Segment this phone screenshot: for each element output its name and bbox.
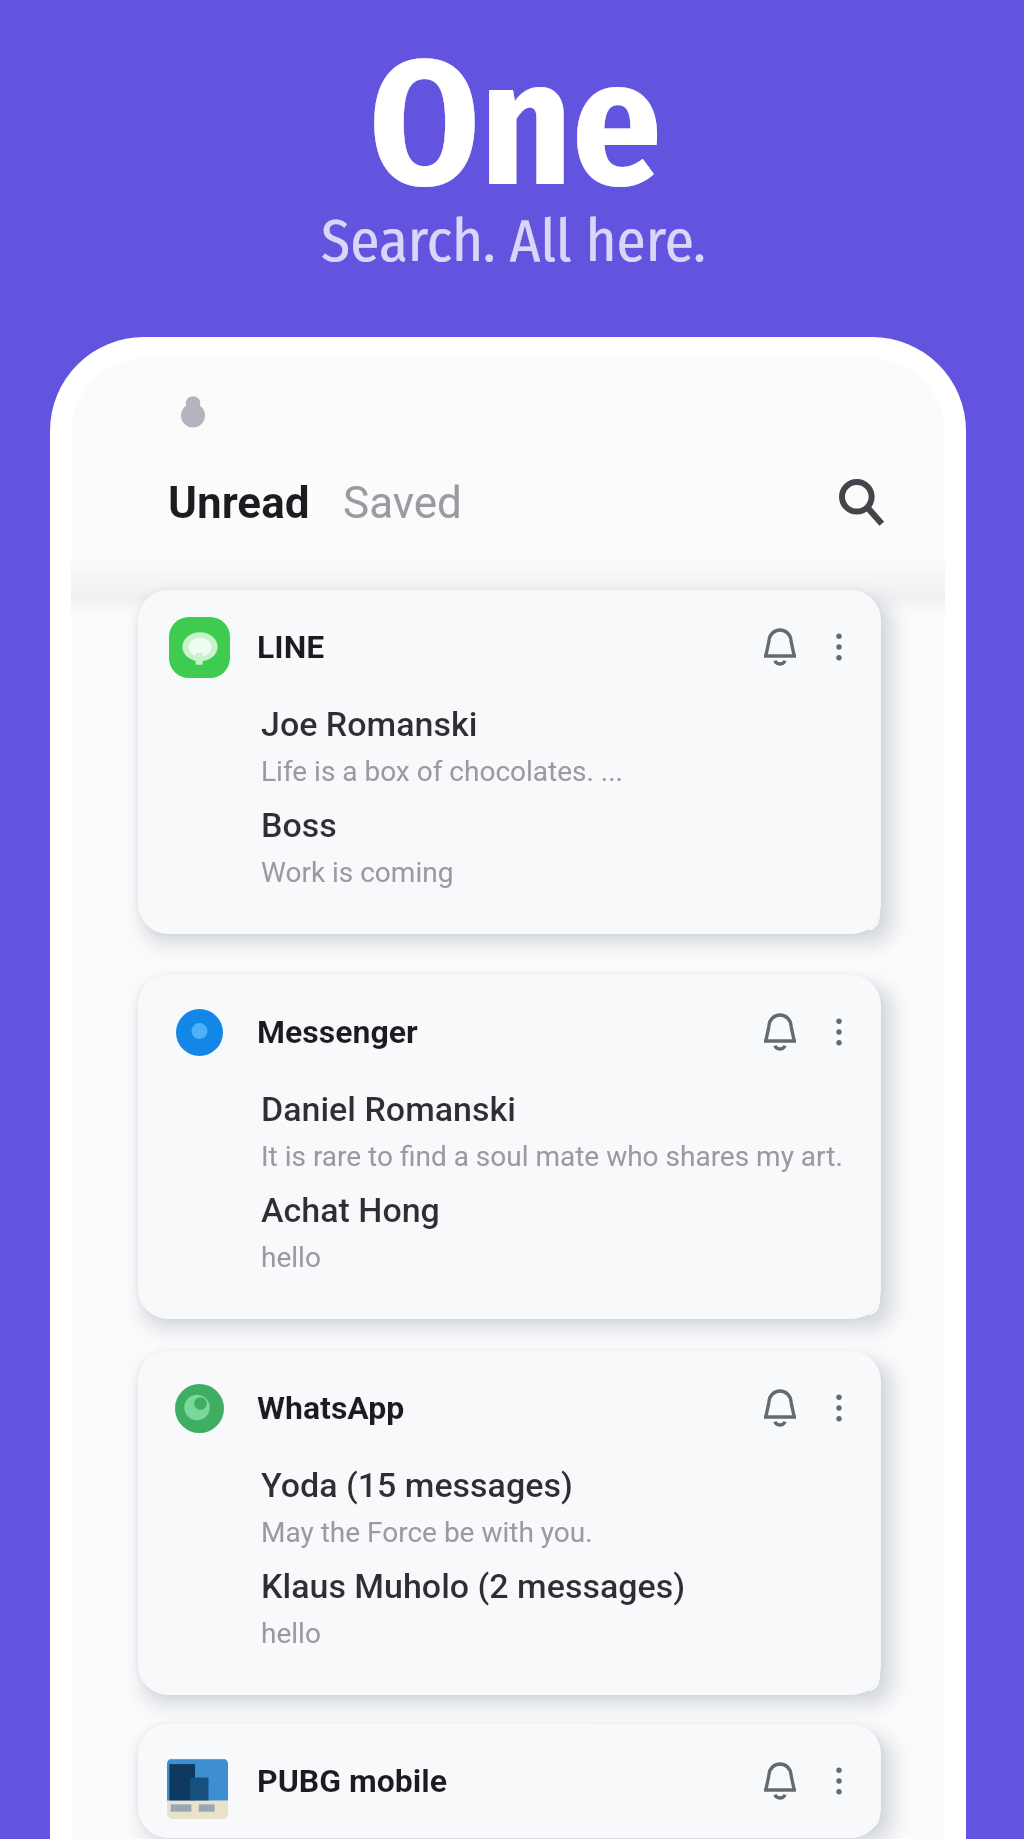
button[interactable]: LINE [138, 590, 881, 934]
staticText: PUBG mobile [257, 1762, 447, 1800]
staticText: hello [261, 1617, 321, 1650]
staticText: Joe Romanski [261, 704, 478, 744]
staticText: Unread [168, 477, 310, 529]
button[interactable]: Search [828, 469, 896, 537]
button[interactable]: More options [821, 1014, 857, 1050]
staticText: Klaus Muholo (2 messages) [261, 1566, 686, 1606]
button[interactable]: PUBG mobile [138, 1724, 881, 1838]
staticText: Achat Hong [261, 1190, 440, 1230]
staticText: Daniel Romanski [261, 1089, 516, 1129]
staticText: Yoda (15 messages) [261, 1465, 573, 1505]
button[interactable]: Saved [337, 471, 468, 535]
button[interactable]: More options [821, 1763, 857, 1799]
button[interactable]: Mute notifications [749, 1750, 811, 1812]
button[interactable]: Mute notifications [749, 1001, 811, 1063]
button[interactable]: More options [821, 629, 857, 665]
button[interactable]: More options [821, 1390, 857, 1426]
staticText: It is rare to find a soul mate who share… [261, 1140, 843, 1173]
button[interactable]: WhatsApp [138, 1351, 881, 1695]
staticText: Saved [343, 477, 462, 529]
staticText: hello [261, 1241, 321, 1274]
staticText: WhatsApp [257, 1389, 405, 1427]
staticText: Work is coming [261, 856, 454, 889]
staticText: One [369, 19, 662, 230]
staticText: Messenger [257, 1013, 418, 1051]
button[interactable]: Unread [162, 471, 316, 535]
staticText: LINE [257, 628, 325, 666]
staticText: Boss [261, 805, 337, 845]
button[interactable]: Mute notifications [749, 616, 811, 678]
button[interactable]: Messenger [138, 975, 881, 1319]
staticText: Search. All here. [321, 206, 706, 277]
staticText: Life is a box of chocolates. ... [261, 755, 624, 788]
button[interactable]: Mute notifications [749, 1377, 811, 1439]
staticText: May the Force be with you. [261, 1516, 593, 1549]
